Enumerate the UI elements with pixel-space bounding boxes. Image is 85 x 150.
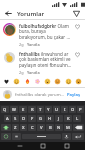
button[interactable]: Q <box>1 106 9 113</box>
staticText: M <box>66 125 70 131</box>
button[interactable]: Recents <box>62 142 71 150</box>
button[interactable]: N <box>55 124 63 131</box>
button[interactable]: F <box>28 115 36 122</box>
button[interactable]: fulbolhufsdgbrkr Olam bura, buraya bırak… <box>0 20 85 48</box>
button[interactable]: B <box>46 124 54 131</box>
button[interactable]: Fire <box>24 78 31 85</box>
button[interactable]: Voice input <box>62 133 71 140</box>
staticText: K <box>67 116 70 122</box>
staticText: N <box>57 125 61 131</box>
button[interactable]: Yanıtla <box>27 70 40 75</box>
button[interactable]: G <box>37 115 45 122</box>
button[interactable]: Yanıtla <box>27 42 40 47</box>
staticText: 2g <box>19 42 24 47</box>
staticText: X <box>22 125 25 131</box>
staticText: J <box>58 116 60 122</box>
staticText: 2g <box>19 70 24 75</box>
staticText: fnthalilbs olarak yorum yap... <box>15 92 64 98</box>
button[interactable]: X <box>20 124 27 131</box>
button[interactable]: Space <box>22 134 61 139</box>
staticText: S <box>14 116 17 122</box>
button[interactable]: Back <box>4 9 13 18</box>
button[interactable]: Heart <box>3 78 10 85</box>
staticText: L <box>76 116 79 122</box>
button[interactable]: O <box>69 106 76 113</box>
button[interactable]: L <box>73 115 81 122</box>
button[interactable]: Send <box>72 9 81 18</box>
button[interactable]: Like <box>74 51 81 58</box>
button[interactable]: Emoji 4 <box>75 78 82 85</box>
button[interactable]: S <box>12 115 19 122</box>
button[interactable]: fnthalilbs olarak yorum yap... <box>15 92 64 98</box>
button[interactable]: Numbers <box>12 133 21 140</box>
staticText: Z <box>14 125 17 131</box>
staticText: V <box>40 125 43 131</box>
staticText: G <box>39 116 43 122</box>
button[interactable]: A <box>4 115 11 122</box>
staticText: D <box>22 116 26 122</box>
staticText: A <box>6 116 9 122</box>
button[interactable]: Shift <box>1 124 11 131</box>
button[interactable]: T <box>37 106 44 113</box>
staticText: Yorumlar <box>17 10 45 18</box>
button[interactable]: J <box>55 115 63 122</box>
button[interactable]: Emoji 0 <box>13 78 20 85</box>
staticText: B <box>49 125 52 131</box>
button[interactable]: Emoji 2 <box>54 78 61 85</box>
button[interactable]: Y <box>45 106 52 113</box>
staticText: R <box>31 107 34 113</box>
staticText: F <box>31 116 34 122</box>
button[interactable]: K <box>64 115 72 122</box>
button[interactable]: Enter <box>72 133 84 140</box>
staticText: P <box>79 107 82 113</box>
staticText: fulbolhufsdgbrkr Olam bura, buraya bırak… <box>19 23 72 41</box>
staticText: O <box>71 107 75 113</box>
button[interactable]: Home <box>38 142 47 150</box>
button[interactable]: Back <box>15 142 24 150</box>
button[interactable]: W <box>10 106 18 113</box>
button[interactable]: fnthalilbs ilnwuhsnd ar çok baskımlan et… <box>0 48 85 76</box>
button[interactable]: Emoji 1 <box>44 78 51 85</box>
button[interactable]: Emoji 3 <box>65 78 72 85</box>
staticText: C <box>31 125 34 131</box>
button[interactable]: M <box>64 124 72 131</box>
button[interactable]: H <box>46 115 54 122</box>
button[interactable]: R <box>28 106 36 113</box>
staticText: fnthalilbs ilnwuhsnd ar çok baskımlan et… <box>19 51 72 69</box>
staticText: I <box>64 107 66 113</box>
button[interactable]: Blossom <box>34 78 41 85</box>
staticText: W <box>12 107 16 113</box>
button[interactable]: D <box>20 115 27 122</box>
button[interactable]: U <box>53 106 60 113</box>
button[interactable]: E <box>19 106 27 113</box>
button[interactable]: P <box>77 106 84 113</box>
staticText: Paylaş <box>67 92 81 98</box>
staticText: Y <box>47 107 50 113</box>
button[interactable]: Like <box>74 23 81 30</box>
button[interactable]: C <box>28 124 36 131</box>
button[interactable]: Backspace <box>73 124 84 131</box>
staticText: U <box>55 107 59 113</box>
button[interactable]: V <box>37 124 45 131</box>
staticText: E <box>22 107 25 113</box>
button[interactable]: Z <box>12 124 19 131</box>
button[interactable]: Emoji <box>1 133 11 140</box>
staticText: T <box>39 107 42 113</box>
button[interactable]: Paylaş <box>66 92 82 98</box>
staticText: H <box>48 116 52 122</box>
staticText: Q <box>3 107 7 113</box>
button[interactable]: I <box>61 106 68 113</box>
